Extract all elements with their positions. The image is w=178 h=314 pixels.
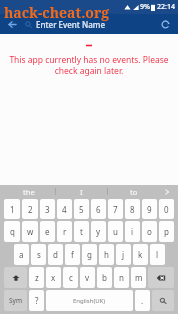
staticText: j	[122, 249, 125, 260]
staticText: m	[135, 272, 143, 283]
button[interactable]: t	[74, 221, 89, 242]
button[interactable]: 8	[125, 199, 140, 219]
staticText: 9	[147, 204, 152, 215]
button[interactable]: j	[116, 244, 131, 265]
button[interactable]: y	[91, 221, 106, 242]
button[interactable]: c	[63, 267, 78, 288]
staticText: 22:14	[157, 2, 175, 12]
staticText: g	[87, 249, 92, 260]
staticText: n	[119, 272, 124, 283]
staticText: 2	[28, 204, 33, 215]
staticText: ?	[35, 295, 39, 306]
staticText: the	[23, 187, 35, 197]
staticText: u	[113, 226, 118, 237]
button[interactable]: 5	[74, 199, 89, 219]
staticText: t	[80, 226, 83, 237]
button[interactable]: English(UK)	[46, 290, 133, 311]
staticText: to	[130, 187, 138, 197]
staticText: b	[102, 272, 107, 283]
button[interactable]: to	[108, 185, 159, 198]
staticText: v	[85, 272, 90, 283]
button[interactable]: q	[4, 221, 20, 242]
staticText: This app currently has no events. Please…	[7, 54, 171, 76]
staticText: .	[141, 295, 144, 306]
button[interactable]: n	[114, 267, 129, 288]
staticText: l	[156, 249, 159, 260]
staticText: hack-cheat.org	[4, 3, 110, 22]
button[interactable]: g	[82, 244, 97, 265]
staticText: f	[71, 249, 74, 260]
staticText: w	[27, 226, 34, 237]
staticText: p	[164, 226, 169, 237]
button[interactable]: Refresh	[157, 16, 173, 32]
button[interactable]: 7	[108, 199, 123, 219]
button[interactable]: Sym	[4, 290, 27, 311]
staticText: k	[138, 249, 143, 260]
button[interactable]: 2	[22, 199, 38, 219]
button[interactable]: Back	[5, 17, 19, 31]
button[interactable]: 9	[142, 199, 157, 219]
button[interactable]: Shift	[4, 267, 27, 288]
button[interactable]: Enter Event Name	[25, 14, 157, 34]
button[interactable]: f	[65, 244, 80, 265]
button[interactable]: l	[150, 244, 165, 265]
staticText: 8	[130, 204, 135, 215]
staticText: c	[69, 272, 73, 283]
staticText: q	[10, 226, 15, 237]
button[interactable]: k	[133, 244, 148, 265]
staticText: 7	[113, 204, 118, 215]
button[interactable]: Search	[152, 290, 174, 311]
button[interactable]: More suggestions	[159, 185, 175, 198]
staticText: r	[63, 226, 67, 237]
staticText: 6	[96, 204, 101, 215]
button[interactable]: the	[3, 185, 55, 198]
button[interactable]: i	[125, 221, 140, 242]
button[interactable]: r	[57, 221, 72, 242]
button[interactable]: 1	[4, 199, 20, 219]
button[interactable]: I	[56, 185, 107, 198]
button[interactable]: 4	[57, 199, 72, 219]
button[interactable]: e	[40, 221, 55, 242]
button[interactable]: a	[14, 244, 29, 265]
staticText: d	[53, 249, 58, 260]
staticText: Sym	[9, 296, 22, 305]
button[interactable]: d	[48, 244, 63, 265]
staticText: 1	[10, 204, 15, 215]
staticText: s	[37, 249, 41, 260]
staticText: o	[147, 226, 152, 237]
staticText: e	[45, 226, 50, 237]
button[interactable]: Backspace	[148, 267, 174, 288]
button[interactable]: o	[142, 221, 157, 242]
button[interactable]: b	[97, 267, 112, 288]
button[interactable]: 0	[159, 199, 174, 219]
staticText: English(UK)	[73, 297, 106, 305]
staticText: i	[131, 226, 134, 237]
button[interactable]: u	[108, 221, 123, 242]
staticText: 4	[62, 204, 67, 215]
staticText: I	[80, 187, 83, 197]
button[interactable]: w	[22, 221, 38, 242]
button[interactable]: m	[131, 267, 146, 288]
button[interactable]: s	[31, 244, 46, 265]
staticText: h	[104, 249, 109, 260]
button[interactable]: z	[29, 267, 44, 288]
button[interactable]: 3	[40, 199, 55, 219]
button[interactable]: p	[159, 221, 174, 242]
staticText: 0	[164, 204, 169, 215]
button[interactable]: x	[46, 267, 61, 288]
button[interactable]: h	[99, 244, 114, 265]
staticText: z	[35, 272, 39, 283]
staticText: Enter Event Name	[36, 19, 105, 30]
button[interactable]: v	[80, 267, 95, 288]
staticText: x	[51, 272, 56, 283]
staticText: a	[19, 249, 24, 260]
staticText: 9%	[140, 2, 150, 12]
staticText: 5	[79, 204, 84, 215]
staticText: y	[96, 226, 101, 237]
button[interactable]: 6	[91, 199, 106, 219]
button[interactable]: .	[135, 290, 150, 311]
button[interactable]: ?	[29, 290, 44, 311]
staticText: 3	[45, 204, 50, 215]
